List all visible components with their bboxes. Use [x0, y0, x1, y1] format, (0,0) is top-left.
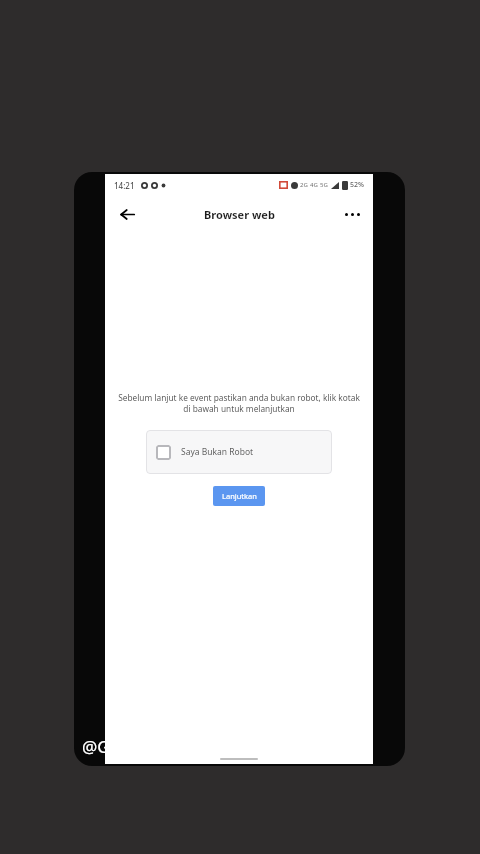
- button[interactable]: Back: [111, 198, 143, 230]
- staticText: Lanjutkan: [222, 491, 257, 501]
- staticText: Sebelum lanjut ke event pastikan anda bu…: [116, 392, 362, 415]
- staticText: 5G: [320, 181, 328, 189]
- button[interactable]: Saya Bukan Robot: [146, 430, 332, 474]
- staticText: 4G: [310, 181, 318, 189]
- button[interactable]: Lanjutkan: [213, 486, 265, 506]
- button[interactable]: More options: [337, 199, 367, 229]
- staticText: 52%: [350, 180, 364, 190]
- staticText: @G: [82, 735, 110, 758]
- staticText: Saya Bukan Robot: [181, 446, 254, 458]
- staticText: 2G: [300, 181, 308, 189]
- staticText: Browser web: [204, 207, 275, 222]
- staticText: 14:21: [114, 180, 135, 191]
